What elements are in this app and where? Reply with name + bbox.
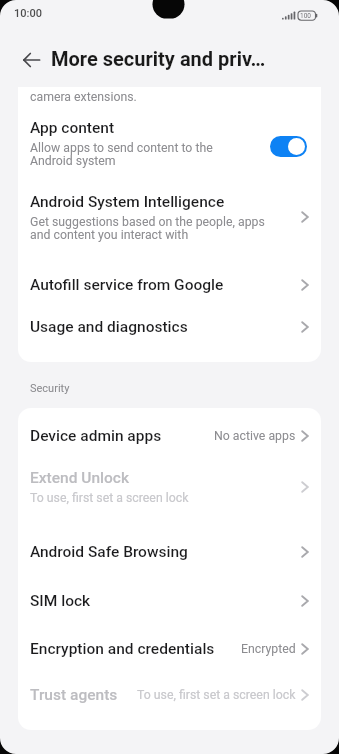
staticText: 100 (300, 12, 311, 20)
staticText: Encryption and credentials (30, 640, 215, 658)
staticText: Trust agents (30, 686, 118, 704)
button[interactable]: Usage and diagnostics (18, 313, 321, 341)
staticText: Encrypted (241, 642, 296, 656)
staticText: No active apps (214, 429, 296, 443)
staticText: Usage and diagnostics (30, 318, 188, 336)
staticText: Extend Unlock (30, 469, 130, 487)
button[interactable]: Trust agents (18, 681, 321, 709)
button[interactable]: Device admin apps (18, 422, 321, 450)
button[interactable] (13, 45, 49, 74)
button[interactable]: Autofill service from Google (18, 271, 321, 299)
button[interactable]: App content (18, 115, 321, 171)
staticText: Security (30, 382, 70, 395)
staticText: 10:00 (14, 7, 42, 20)
staticText: Allow apps to send content to the Androi… (30, 141, 213, 168)
button[interactable]: Encryption and credentials (18, 635, 321, 663)
staticText: Device admin apps (30, 427, 162, 445)
staticText: To use, first set a screen lock (137, 688, 296, 702)
staticText: To use, first set a screen lock (30, 491, 189, 505)
staticText: Autofill service from Google (30, 276, 224, 294)
button[interactable]: Android System Intelligence (18, 189, 321, 245)
staticText: App content (30, 119, 115, 137)
button[interactable] (270, 136, 307, 157)
staticText: SIM lock (30, 592, 91, 610)
staticText: More security and priv… (51, 47, 266, 70)
staticText: Android System Intelligence (30, 193, 225, 211)
button[interactable]: Extend Unlock (18, 466, 321, 507)
button[interactable]: Android Safe Browsing (18, 538, 321, 566)
staticText: Get suggestions based on the people, app… (30, 215, 265, 242)
button[interactable]: SIM lock (18, 587, 321, 615)
staticText: camera extensions. (30, 90, 137, 104)
staticText: Android Safe Browsing (30, 543, 188, 561)
